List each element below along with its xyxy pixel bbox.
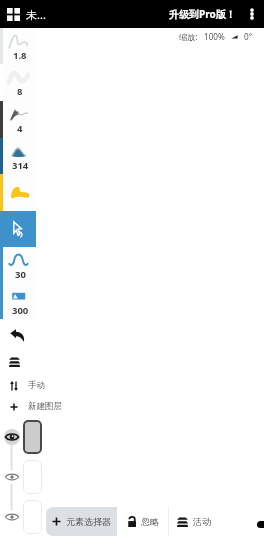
staticText: 升级到Pro版！ [169, 7, 236, 21]
button[interactable]: Tool 1 [0, 64, 36, 101]
button[interactable]: Layers [3, 351, 25, 373]
staticText: 300 [12, 304, 29, 316]
button[interactable]: 升级到Pro版！ [165, 7, 240, 21]
button[interactable]: 手动 [8, 378, 47, 393]
staticText: 0° [244, 31, 253, 42]
staticText: 元素选择器 [66, 516, 111, 527]
button[interactable]: Tool 3 [0, 138, 36, 174]
button[interactable]: 元素选择器 [46, 507, 117, 536]
button[interactable]: 未... [26, 7, 50, 22]
staticText: 8 [17, 85, 23, 97]
button[interactable]: Toggle layer 3 visibility [4, 509, 20, 525]
staticText: 活动 [193, 516, 211, 527]
button[interactable]: Tool 0 [0, 28, 36, 64]
staticText: 未... [26, 7, 46, 22]
button[interactable]: 新建图层 [8, 399, 64, 414]
button[interactable]: Select tool [0, 211, 36, 247]
staticText: 30 [15, 268, 26, 280]
staticText: 新建图层 [28, 401, 62, 412]
button[interactable]: Gallery [0, 0, 26, 28]
staticText: 314 [12, 159, 29, 171]
button[interactable]: 活动 [169, 507, 218, 536]
button[interactable]: Layer 2 [23, 460, 42, 494]
staticText: 缩放: [179, 31, 198, 42]
button[interactable]: More options [240, 0, 264, 28]
button[interactable]: Tool 2 [0, 101, 36, 138]
button[interactable]: Tool 5 [0, 247, 36, 283]
button[interactable]: Layer 3 [23, 500, 42, 534]
button[interactable]: Undo [6, 324, 28, 346]
button[interactable]: 忽略 [117, 507, 168, 536]
staticText: 100% [204, 31, 225, 42]
button[interactable]: Toggle layer 1 visibility [4, 429, 20, 445]
button[interactable]: Drag handle [257, 521, 264, 528]
button[interactable]: Tool 6 [0, 283, 36, 319]
staticText: 忽略 [141, 516, 159, 527]
staticText: 1.8 [13, 49, 27, 61]
staticText: 手动 [28, 380, 45, 391]
button[interactable]: Toggle layer 2 visibility [4, 469, 20, 485]
button[interactable]: Layer 1 [23, 420, 42, 454]
button[interactable]: Tool 4 [0, 174, 36, 211]
staticText: 4 [17, 122, 23, 134]
